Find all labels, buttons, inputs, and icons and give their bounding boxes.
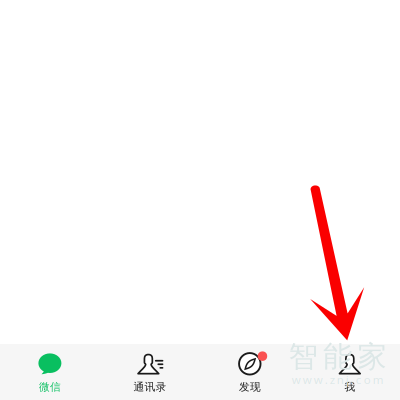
staticText: 智能家 (289, 338, 387, 375)
button[interactable]: 发现 (200, 344, 300, 400)
staticText: 我 (344, 380, 355, 394)
staticText: www.znj.com (292, 372, 384, 387)
staticText: 发现 (239, 380, 261, 394)
button[interactable]: 微信 (0, 344, 100, 400)
staticText: 通讯录 (133, 380, 166, 394)
staticText: 微信 (39, 380, 61, 394)
button[interactable]: 通讯录 (100, 344, 200, 400)
button[interactable]: 我 (300, 344, 400, 400)
